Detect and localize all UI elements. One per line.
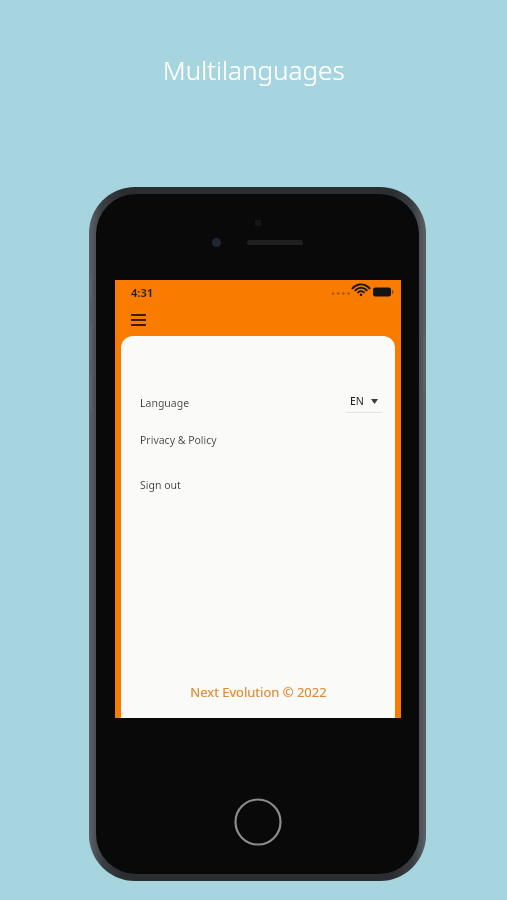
staticText: Language [140,396,190,410]
button[interactable]: Open navigation menu [123,305,153,335]
staticText: Multilanguages [163,52,345,87]
staticText: EN [350,394,364,408]
button[interactable]: Sign out [121,475,395,495]
staticText: 4:31 [131,285,153,300]
staticText: Sign out [140,478,181,492]
button[interactable]: Privacy & Policy [121,430,395,450]
staticText: Next Evolution © 2022 [190,683,327,701]
button[interactable]: Language [121,388,395,418]
button[interactable]: Home [234,798,282,846]
staticText: Privacy & Policy [140,433,217,447]
